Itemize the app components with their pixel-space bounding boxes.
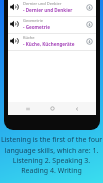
staticText: Küche bbox=[23, 35, 35, 40]
staticText: - Küche, Küchengeräte bbox=[23, 41, 75, 47]
staticText: Dernier und Denkier bbox=[23, 1, 62, 6]
button[interactable]: Home bbox=[47, 103, 58, 114]
staticText: - Dernier und Denkier bbox=[23, 7, 73, 13]
staticText: Geometrie bbox=[23, 18, 43, 23]
button[interactable]: Download bbox=[85, 20, 94, 29]
button[interactable]: Dernier und Denkier bbox=[8, 0, 96, 17]
button[interactable]: Geometrie bbox=[8, 17, 96, 34]
button[interactable]: Download bbox=[85, 37, 94, 46]
staticText: - Geometrie bbox=[23, 24, 50, 30]
button[interactable]: Download bbox=[85, 3, 94, 12]
button[interactable]: Recent apps bbox=[22, 103, 33, 114]
staticText: Listening is the first of the four langu… bbox=[0, 135, 103, 175]
button[interactable]: Küche bbox=[8, 34, 96, 51]
button[interactable]: Back bbox=[71, 103, 82, 114]
